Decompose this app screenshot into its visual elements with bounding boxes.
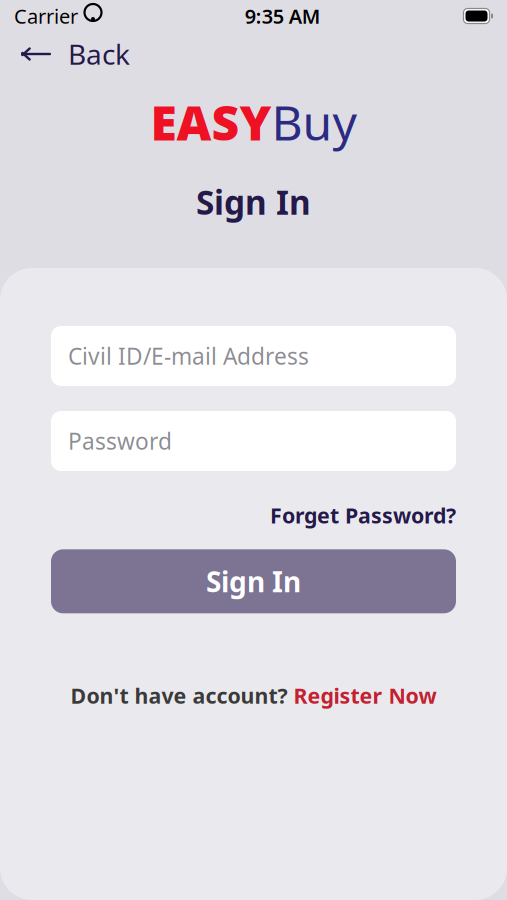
button[interactable]: Don't have account? (70, 675, 436, 716)
button[interactable]: Forget Password? (270, 497, 456, 533)
staticText: Don't have account? (70, 681, 287, 710)
staticText: Civil ID/E-mail Address (68, 341, 309, 371)
staticText: Password (68, 426, 172, 456)
staticText: EASY (150, 90, 271, 154)
staticText: Buy (271, 90, 356, 154)
staticText: Sign In (196, 180, 311, 224)
staticText: Sign In (206, 563, 301, 600)
button[interactable]: Sign In (51, 549, 456, 613)
staticText: Forget Password? (270, 501, 456, 529)
staticText: Carrier (14, 3, 78, 29)
staticText: 9:35 AM (245, 3, 321, 29)
button[interactable]: Back (0, 27, 150, 81)
staticText: Register Now (293, 681, 436, 710)
staticText: Back (68, 35, 130, 73)
